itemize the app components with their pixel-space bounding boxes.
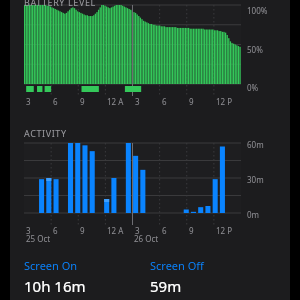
button[interactable]: Screen On (24, 258, 150, 296)
staticText: Screen On (24, 258, 78, 273)
staticText: 26 Oct (134, 233, 159, 244)
staticText: 50% (247, 44, 263, 55)
staticText: 3 (135, 225, 140, 236)
staticText: 59m (150, 276, 182, 296)
staticText: 60m (247, 139, 264, 150)
staticText: 9 (189, 96, 194, 107)
staticText: 6 (162, 96, 167, 107)
staticText: 12 P (216, 96, 233, 107)
staticText: 3 (135, 96, 140, 107)
staticText: 0m (247, 209, 260, 220)
staticText: 12 A (107, 96, 124, 107)
staticText: 9 (80, 225, 85, 236)
staticText: 9 (189, 225, 194, 236)
staticText: 3 (26, 96, 31, 107)
staticText: BATTERY LEVEL (24, 0, 96, 8)
button[interactable]: Screen Off (150, 258, 276, 296)
staticText: 6 (53, 96, 58, 107)
staticText: 25 Oct (26, 233, 51, 244)
staticText: 6 (53, 225, 58, 236)
staticText: 10h 16m (24, 276, 86, 296)
staticText: 0% (247, 82, 259, 93)
staticText: 3 (26, 225, 31, 236)
staticText: 12 P (216, 225, 233, 236)
staticText: 100% (247, 5, 268, 16)
staticText: 6 (162, 225, 167, 236)
staticText: 12 A (107, 225, 124, 236)
staticText: Screen Off (150, 258, 204, 273)
staticText: 30m (247, 174, 264, 185)
staticText: ACTIVITY (24, 127, 67, 139)
staticText: 9 (80, 96, 85, 107)
